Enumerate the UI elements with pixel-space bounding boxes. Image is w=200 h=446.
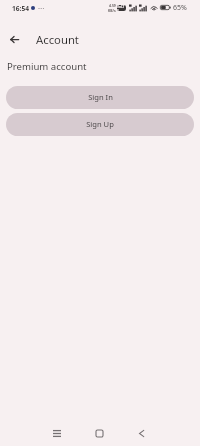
staticText: KB/s <box>108 8 116 13</box>
button[interactable]: Sign In <box>6 86 194 109</box>
staticText: VoLTE <box>117 5 126 11</box>
button[interactable]: Recent apps <box>42 419 71 446</box>
staticText: 65% <box>173 3 187 13</box>
staticText: Premium account <box>7 60 87 73</box>
staticText: Sign In <box>88 92 113 102</box>
staticText: 4.59 <box>109 3 116 8</box>
button[interactable]: Sign Up <box>6 113 194 136</box>
button[interactable]: Home <box>85 419 114 446</box>
button[interactable]: Back <box>127 419 156 446</box>
button[interactable]: Back <box>4 29 25 50</box>
staticText: Sign Up <box>86 119 114 129</box>
staticText: Account <box>36 32 79 47</box>
staticText: 16:54 <box>12 4 29 13</box>
